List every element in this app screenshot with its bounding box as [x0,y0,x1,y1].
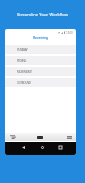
button[interactable]: MOVE MGMT [5,67,76,76]
button[interactable]: Back [16,142,30,155]
button[interactable]: Home [35,142,49,155]
staticText: Receiving [33,35,48,40]
button[interactable]: Keyboard [34,133,45,141]
button[interactable]: Sort [8,133,17,141]
staticText: Streamline Your Workflow [0,12,85,17]
button[interactable]: Recent apps [53,142,67,155]
staticText: PUTAWAY [17,48,28,52]
button[interactable]: More options [64,133,74,141]
button[interactable]: PICKING [5,56,76,65]
button[interactable]: OUTBOUND [5,78,76,87]
staticText: 12:00 [66,31,73,34]
staticText: MOVE MGMT [17,70,32,74]
staticText: OUTBOUND [17,81,31,85]
staticText: PICKING [17,59,26,63]
button[interactable]: PUTAWAY [5,45,76,54]
